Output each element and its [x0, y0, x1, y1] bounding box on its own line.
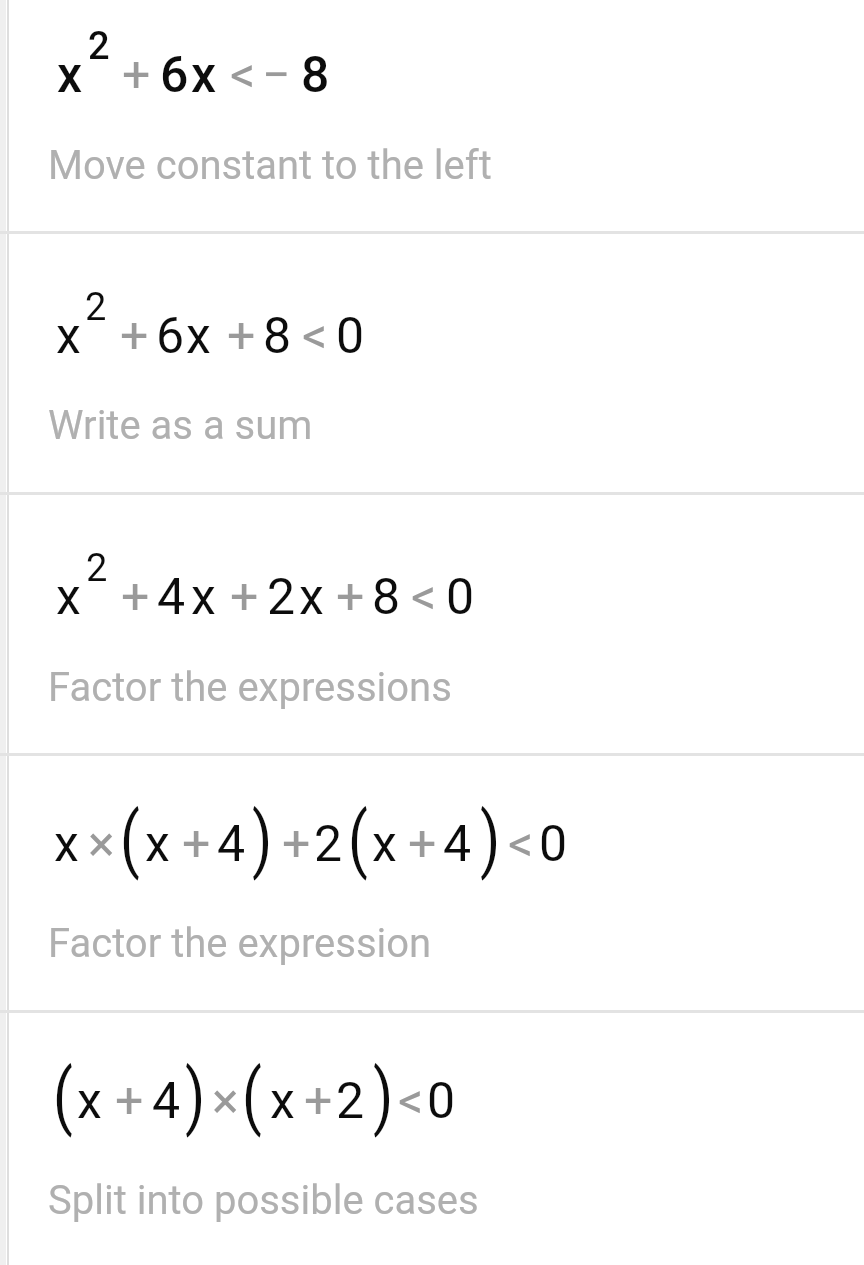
- staticText: 6: [156, 307, 185, 366]
- staticText: +: [336, 568, 365, 627]
- staticText: 4: [443, 815, 472, 874]
- staticText: <: [508, 815, 534, 874]
- staticText: 8: [372, 568, 401, 627]
- staticText: Factor the expressions: [48, 664, 452, 711]
- staticText: +: [120, 307, 149, 366]
- staticText: x: [77, 1072, 102, 1131]
- staticText: +: [121, 568, 150, 627]
- staticText: x: [56, 568, 81, 627]
- staticText: +: [115, 1072, 144, 1131]
- staticText: x: [145, 815, 170, 874]
- staticText: ): [480, 797, 501, 881]
- staticText: x: [270, 1072, 295, 1131]
- button[interactable]: x: [0, 0, 864, 231]
- staticText: x: [56, 307, 81, 366]
- staticText: +: [304, 1072, 333, 1131]
- staticText: x: [191, 46, 217, 105]
- staticText: x: [57, 46, 83, 105]
- staticText: 8: [263, 307, 292, 366]
- staticText: 4: [157, 568, 186, 627]
- staticText: 0: [539, 815, 568, 874]
- staticText: ×: [212, 1072, 239, 1131]
- staticText: +: [230, 568, 259, 627]
- staticText: +: [122, 46, 151, 105]
- staticText: 6: [160, 46, 189, 105]
- staticText: 4: [217, 815, 246, 874]
- staticText: (: [53, 1054, 73, 1138]
- staticText: x: [191, 568, 216, 627]
- staticText: Factor the expression: [48, 920, 432, 967]
- staticText: +: [282, 815, 311, 874]
- staticText: 0: [336, 307, 365, 366]
- staticText: Split into possible cases: [48, 1177, 479, 1224]
- staticText: x: [299, 568, 324, 627]
- staticText: x: [186, 307, 211, 366]
- staticText: +: [182, 815, 211, 874]
- staticText: 0: [446, 568, 475, 627]
- button[interactable]: (: [0, 1013, 864, 1265]
- staticText: ): [373, 1054, 394, 1138]
- staticText: 2: [85, 285, 107, 330]
- staticText: +: [408, 815, 437, 874]
- staticText: Write as a sum: [48, 402, 313, 449]
- staticText: <: [230, 46, 256, 105]
- staticText: <: [302, 307, 328, 366]
- staticText: ): [252, 797, 273, 881]
- staticText: 2: [336, 1072, 365, 1131]
- staticText: x: [372, 815, 397, 874]
- staticText: 4: [152, 1072, 181, 1131]
- staticText: (: [348, 797, 368, 881]
- staticText: 2: [86, 546, 108, 591]
- staticText: 2: [314, 815, 343, 874]
- staticText: x: [54, 815, 79, 874]
- staticText: <: [398, 1072, 424, 1131]
- staticText: (: [120, 797, 140, 881]
- staticText: 0: [427, 1072, 456, 1131]
- staticText: ): [185, 1054, 206, 1138]
- staticText: 2: [267, 568, 296, 627]
- staticText: −: [262, 46, 291, 105]
- staticText: ×: [88, 815, 115, 874]
- button[interactable]: x: [0, 756, 864, 1011]
- staticText: +: [227, 307, 256, 366]
- button[interactable]: x: [0, 496, 864, 754]
- staticText: 8: [301, 46, 330, 105]
- staticText: <: [411, 568, 437, 627]
- staticText: Move constant to the left: [48, 142, 492, 189]
- staticText: 2: [88, 24, 110, 69]
- button[interactable]: x: [0, 233, 864, 494]
- staticText: (: [242, 1054, 262, 1138]
